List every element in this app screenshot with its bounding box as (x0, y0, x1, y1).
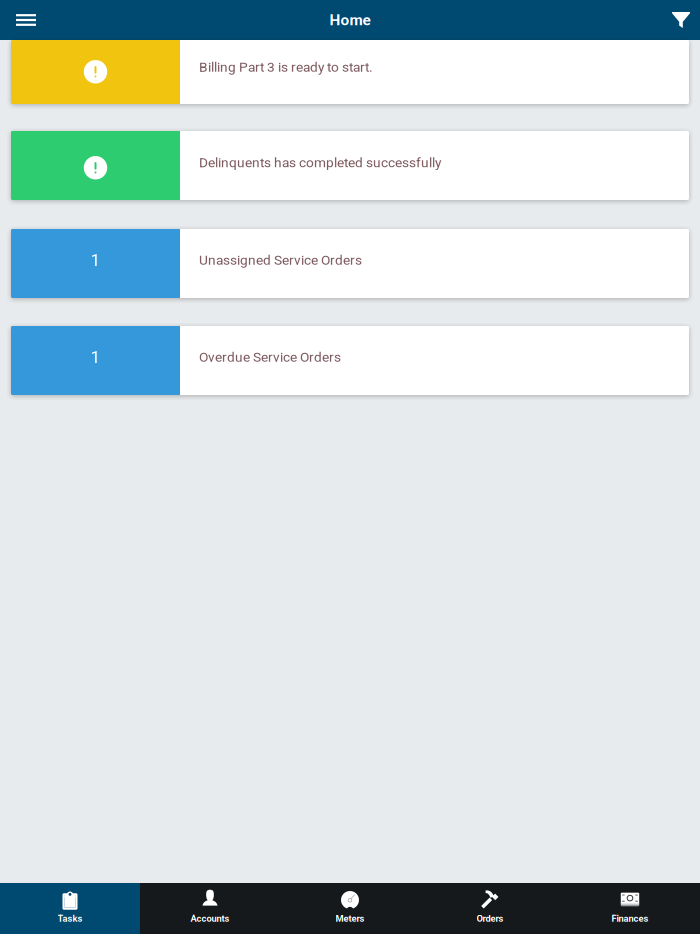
button[interactable]: Accounts (140, 883, 280, 934)
staticText: Finances (611, 913, 648, 924)
staticText: 1 (90, 250, 100, 270)
button[interactable]: Orders (420, 883, 560, 934)
staticText: Home (329, 11, 370, 29)
button[interactable]: Billing Part 3 is ready to start. (11, 40, 689, 104)
staticText: Delinquents has completed successfully (199, 154, 441, 170)
button[interactable]: Filter (663, 0, 700, 40)
staticText: Orders (476, 913, 503, 924)
button[interactable]: Menu (0, 0, 44, 40)
staticText: Tasks (57, 913, 82, 924)
button[interactable]: Meters (280, 883, 420, 934)
button[interactable]: 1 (11, 326, 689, 395)
button[interactable]: Tasks (0, 883, 140, 934)
staticText: Billing Part 3 is ready to start. (199, 59, 373, 75)
button[interactable]: Delinquents has completed successfully (11, 131, 689, 200)
staticText: Accounts (190, 913, 229, 924)
staticText: Meters (335, 913, 364, 924)
staticText: 1 (90, 347, 100, 367)
staticText: Unassigned Service Orders (199, 252, 362, 268)
button[interactable]: 1 (11, 229, 689, 298)
staticText: Overdue Service Orders (199, 349, 341, 365)
button[interactable]: Finances (560, 883, 700, 934)
